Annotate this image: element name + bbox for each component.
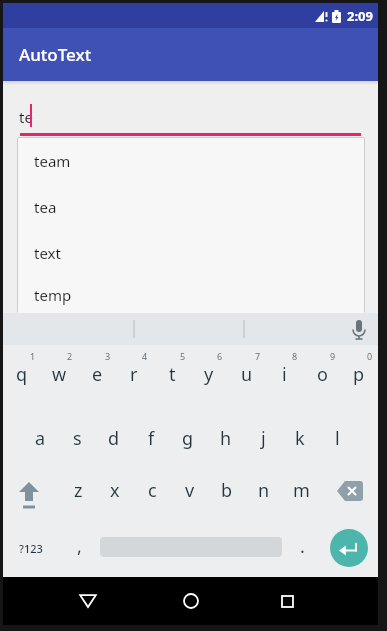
button[interactable]: w [41,357,77,391]
staticText: AutoText [19,43,92,66]
button[interactable]: e [79,357,115,391]
staticText: 9 [330,350,336,362]
button[interactable]: y [191,357,227,391]
button[interactable]: text [18,230,364,276]
button[interactable]: k [282,421,318,455]
staticText: 2:09 [347,7,373,25]
button[interactable]: r [116,357,152,391]
staticText: y [204,362,214,387]
staticText: o [317,362,328,387]
button[interactable]: team [18,138,364,184]
button[interactable]: b [209,473,245,507]
staticText: ?123 [19,541,43,556]
button[interactable]: j [245,421,281,455]
staticText: j [261,426,266,451]
button[interactable]: q [4,357,40,391]
staticText: z [74,478,83,503]
staticText: k [295,426,305,451]
staticText: 5 [180,350,186,362]
staticText: 6 [217,350,223,362]
button[interactable] [64,577,112,625]
button[interactable]: z [60,473,96,507]
button[interactable]: i [266,357,302,391]
button[interactable]: s [59,421,95,455]
staticText: e [92,362,103,387]
button[interactable]: temp [18,276,364,313]
staticText: tea [34,197,57,217]
button[interactable]: h [208,421,244,455]
staticText: x [110,478,120,503]
staticText: temp [34,285,72,305]
button[interactable]: x [97,473,133,507]
staticText: te [19,107,33,127]
button[interactable]: m [283,473,319,507]
staticText: v [185,478,195,503]
staticText: h [220,426,232,451]
staticText: 1 [30,350,36,362]
button[interactable]: a [22,421,58,455]
staticText: t [169,362,176,387]
button[interactable]: t [154,357,190,391]
button[interactable]: ?123 [13,533,49,563]
staticText: l [335,426,340,451]
staticText: d [108,426,120,451]
staticText: n [258,478,270,503]
button[interactable]: l [319,421,355,455]
button[interactable] [167,577,215,625]
button[interactable]: c [134,473,170,507]
staticText: m [293,478,310,503]
button[interactable]: d [96,421,132,455]
button[interactable] [10,478,48,516]
staticText: 4 [142,350,148,362]
button[interactable]: , [61,529,97,563]
staticText: c [148,478,157,503]
staticText: i [282,362,287,387]
staticText: 2 [67,350,73,362]
staticText: 8 [292,350,298,362]
button[interactable]: o [304,357,340,391]
button[interactable]: f [133,421,169,455]
staticText: q [16,362,28,387]
staticText: 7 [255,350,261,362]
button[interactable]: . [284,529,320,563]
staticText: text [34,243,61,263]
button[interactable]: v [172,473,208,507]
staticText: 3 [105,350,111,362]
staticText: r [130,362,138,387]
staticText: b [221,478,233,503]
button[interactable]: p [341,357,377,391]
staticText: f [148,426,155,451]
button[interactable]: tea [18,184,364,230]
button[interactable]: u [229,357,265,391]
button[interactable] [263,577,311,625]
staticText: 0 [367,350,373,362]
button[interactable] [337,481,363,501]
staticText: team [34,151,71,171]
staticText: a [35,426,46,451]
button[interactable] [3,313,378,345]
button[interactable] [330,529,368,567]
button[interactable]: n [246,473,282,507]
staticText: , [77,534,82,559]
button[interactable]: g [170,421,206,455]
staticText: g [182,426,194,451]
staticText: . [300,534,305,559]
staticText: s [73,426,82,451]
staticText: p [353,362,365,387]
staticText: w [52,362,67,387]
staticText: u [241,362,253,387]
